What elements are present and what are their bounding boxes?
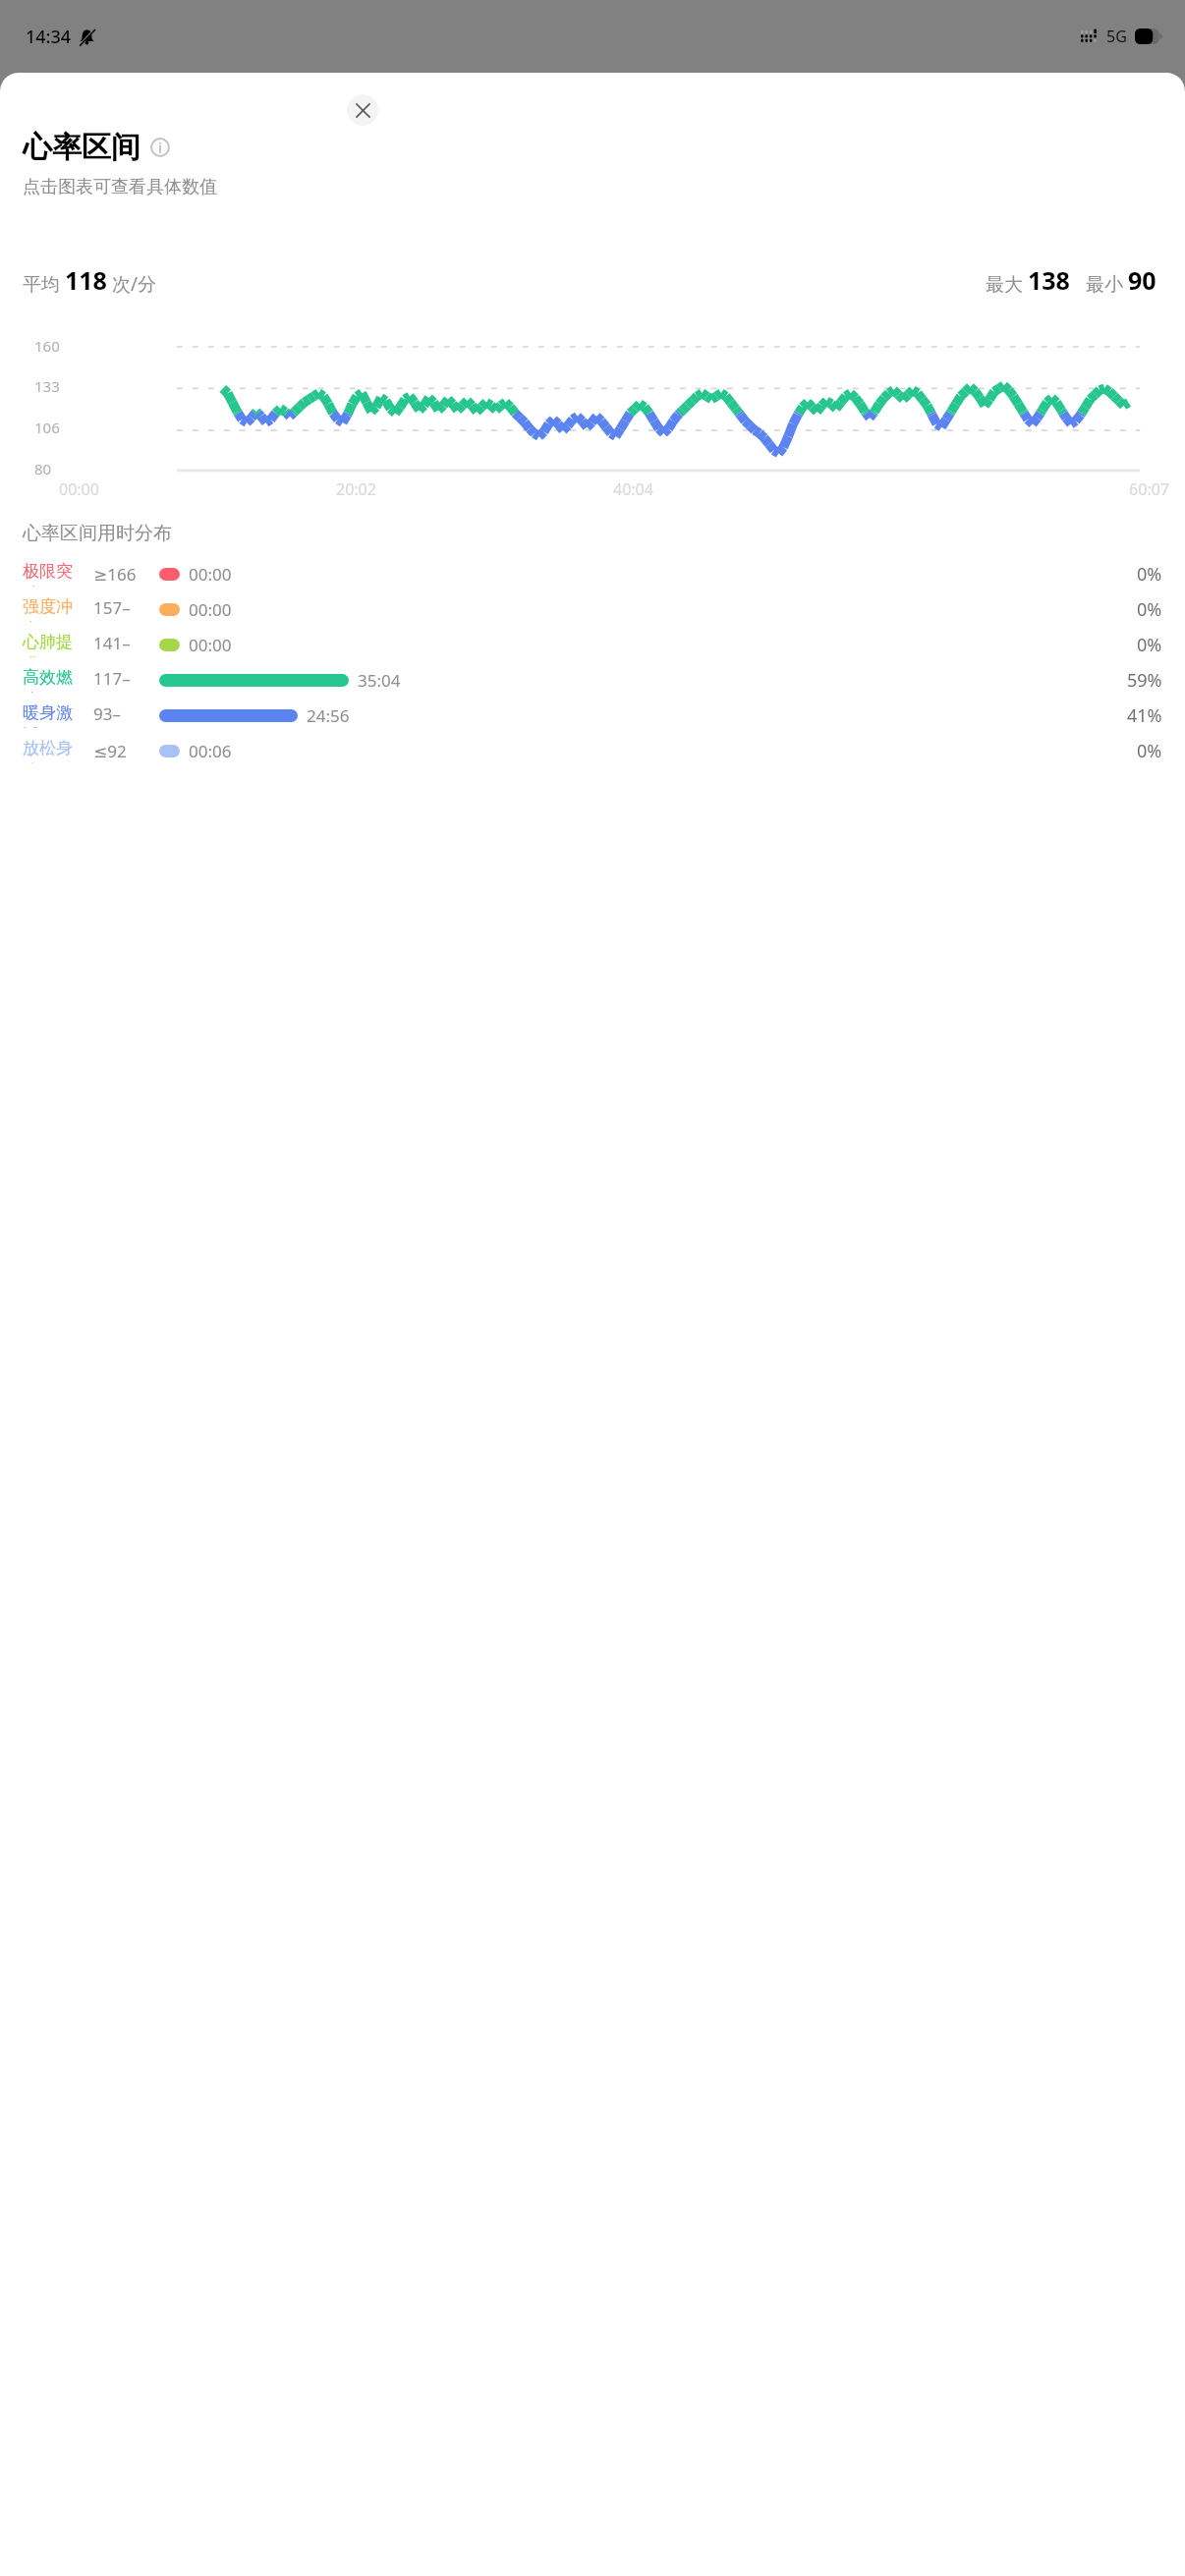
staticText: 00:00 xyxy=(189,634,232,656)
staticText: 106 xyxy=(34,418,1185,437)
staticText: 最大 xyxy=(986,271,1028,297)
staticText: 次/分 xyxy=(107,271,157,297)
staticText: 心率区间 xyxy=(23,129,141,166)
button[interactable]: 极限突破 xyxy=(0,561,1185,587)
staticText: 平均 xyxy=(23,271,65,297)
staticText: ≤92 xyxy=(93,740,147,762)
staticText: 点击图表可查看具体数值 xyxy=(23,176,217,198)
staticText: 5G xyxy=(1106,26,1127,47)
staticText: 90 xyxy=(1128,263,1157,297)
button[interactable]: 暖身激活 xyxy=(0,702,1185,728)
staticText: 60:07 xyxy=(891,478,1169,500)
staticText: 160 xyxy=(34,336,1185,356)
staticText: 138 xyxy=(1028,263,1070,297)
staticText: 20:02 xyxy=(336,478,613,500)
staticText: 117–140 xyxy=(93,667,147,693)
staticText: 40:04 xyxy=(613,478,891,500)
staticText: 00:00 xyxy=(189,563,232,586)
staticText: 59% xyxy=(1127,668,1162,693)
staticText: 93–116 xyxy=(93,702,147,728)
staticText: 心肺提升 xyxy=(23,632,85,657)
staticText: 暖身激活 xyxy=(23,702,85,728)
staticText: 00:00 xyxy=(189,598,232,621)
staticText: 118 xyxy=(65,263,107,297)
staticText: 强度冲击 xyxy=(23,596,85,622)
staticText: 80 xyxy=(34,459,1185,478)
staticText: 0% xyxy=(1137,739,1162,763)
staticText: 35:04 xyxy=(358,669,401,692)
button[interactable]: Info xyxy=(149,137,171,158)
button[interactable]: 放松身体 xyxy=(0,738,1185,763)
staticText: 41% xyxy=(1127,703,1162,728)
staticText: 高效燃脂 xyxy=(23,667,85,693)
staticText: 141–156 xyxy=(93,632,147,657)
button[interactable]: 高效燃脂 xyxy=(0,667,1185,693)
staticText: ≥166 xyxy=(93,563,147,586)
staticText: 心率区间用时分布 xyxy=(23,522,172,545)
button[interactable]: 心肺提升 xyxy=(0,632,1185,657)
button[interactable]: Close xyxy=(347,94,378,126)
staticText: 0% xyxy=(1137,597,1162,622)
staticText: 0% xyxy=(1137,633,1162,657)
staticText: 133 xyxy=(34,376,1185,396)
staticText: 157–165 xyxy=(93,596,147,622)
button[interactable]: 160 xyxy=(0,308,1185,500)
button[interactable]: 强度冲击 xyxy=(0,596,1185,622)
staticText: 0% xyxy=(1137,562,1162,587)
staticText: 极限突破 xyxy=(23,561,85,587)
staticText: 放松身体 xyxy=(23,738,85,763)
staticText: 最小 xyxy=(1086,271,1128,297)
staticText: 00:06 xyxy=(189,740,232,762)
staticText: 14:34 xyxy=(26,25,72,49)
staticText: 00:00 xyxy=(59,478,336,500)
staticText: 24:56 xyxy=(307,704,350,727)
